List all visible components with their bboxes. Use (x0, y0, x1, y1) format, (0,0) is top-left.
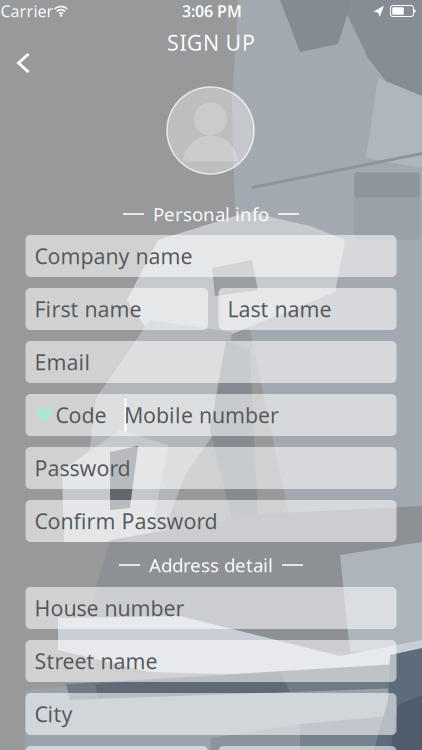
staticText: Address detail (149, 553, 273, 577)
staticText: 3:06 PM (182, 0, 242, 22)
staticText: Mobile number (124, 401, 279, 429)
staticText: Email (34, 348, 90, 376)
button[interactable]: Text field (218, 746, 396, 750)
staticText: Code (55, 401, 106, 429)
button[interactable]: Password (25, 447, 396, 489)
button[interactable]: Confirm Password (25, 500, 396, 542)
staticText: Street name (34, 647, 157, 675)
staticText: SIGN UP (167, 28, 255, 57)
button[interactable]: Last name (218, 288, 396, 330)
button[interactable]: Street name (25, 640, 396, 682)
button[interactable]: First name (25, 288, 208, 330)
staticText: House number (34, 594, 184, 622)
staticText: Password (34, 454, 130, 482)
staticText: Last name (227, 295, 331, 323)
staticText: First name (34, 295, 141, 323)
button[interactable]: Company name (25, 235, 396, 277)
button[interactable]: City (25, 693, 396, 735)
staticText: City (34, 700, 72, 728)
staticText: Carrier (0, 0, 53, 22)
button[interactable]: Back (2, 20, 46, 64)
staticText: Confirm Password (34, 507, 217, 535)
staticText: Personal info (153, 202, 269, 226)
button[interactable]: House number (25, 587, 396, 629)
button[interactable]: Country code and mobile number (25, 394, 396, 436)
button[interactable]: Text field (25, 746, 208, 750)
button[interactable]: Add profile photo (167, 87, 254, 174)
button[interactable]: Email (25, 341, 396, 383)
staticText: Company name (34, 242, 192, 270)
